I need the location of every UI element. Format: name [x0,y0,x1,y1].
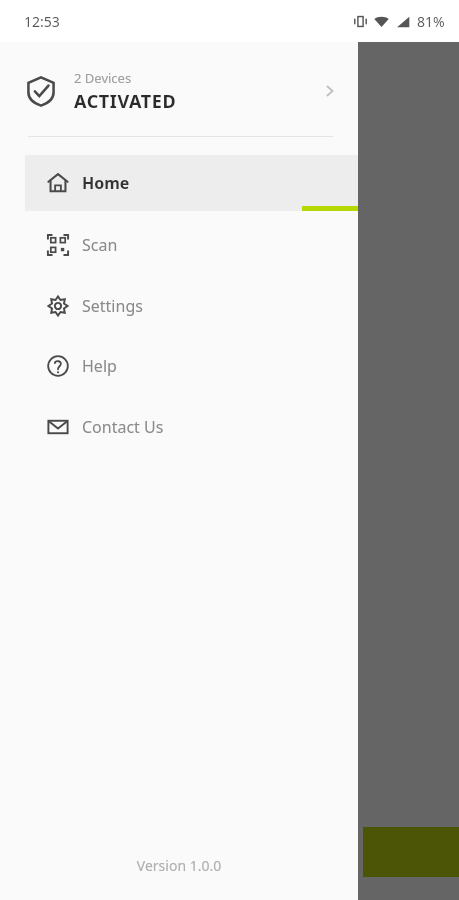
staticText: Home [82,172,130,194]
staticText: Version 1.0.0 [0,856,358,875]
button[interactable]: 2 Devices [0,62,358,120]
staticText: 12:53 [24,12,60,31]
button[interactable]: Contact Us [0,400,358,454]
button[interactable]: Help [0,339,358,393]
staticText: Contact Us [82,416,164,438]
button[interactable]: Home [25,155,358,211]
staticText: ACTIVATED [74,89,177,114]
staticText: Help [82,355,117,377]
button[interactable] [358,42,459,900]
button[interactable]: Settings [0,279,358,333]
staticText: 81% [417,12,445,31]
staticText: Settings [82,295,143,317]
staticText: Scan [82,234,118,256]
staticText: 2 Devices [74,69,132,87]
button[interactable]: Scan [0,218,358,272]
